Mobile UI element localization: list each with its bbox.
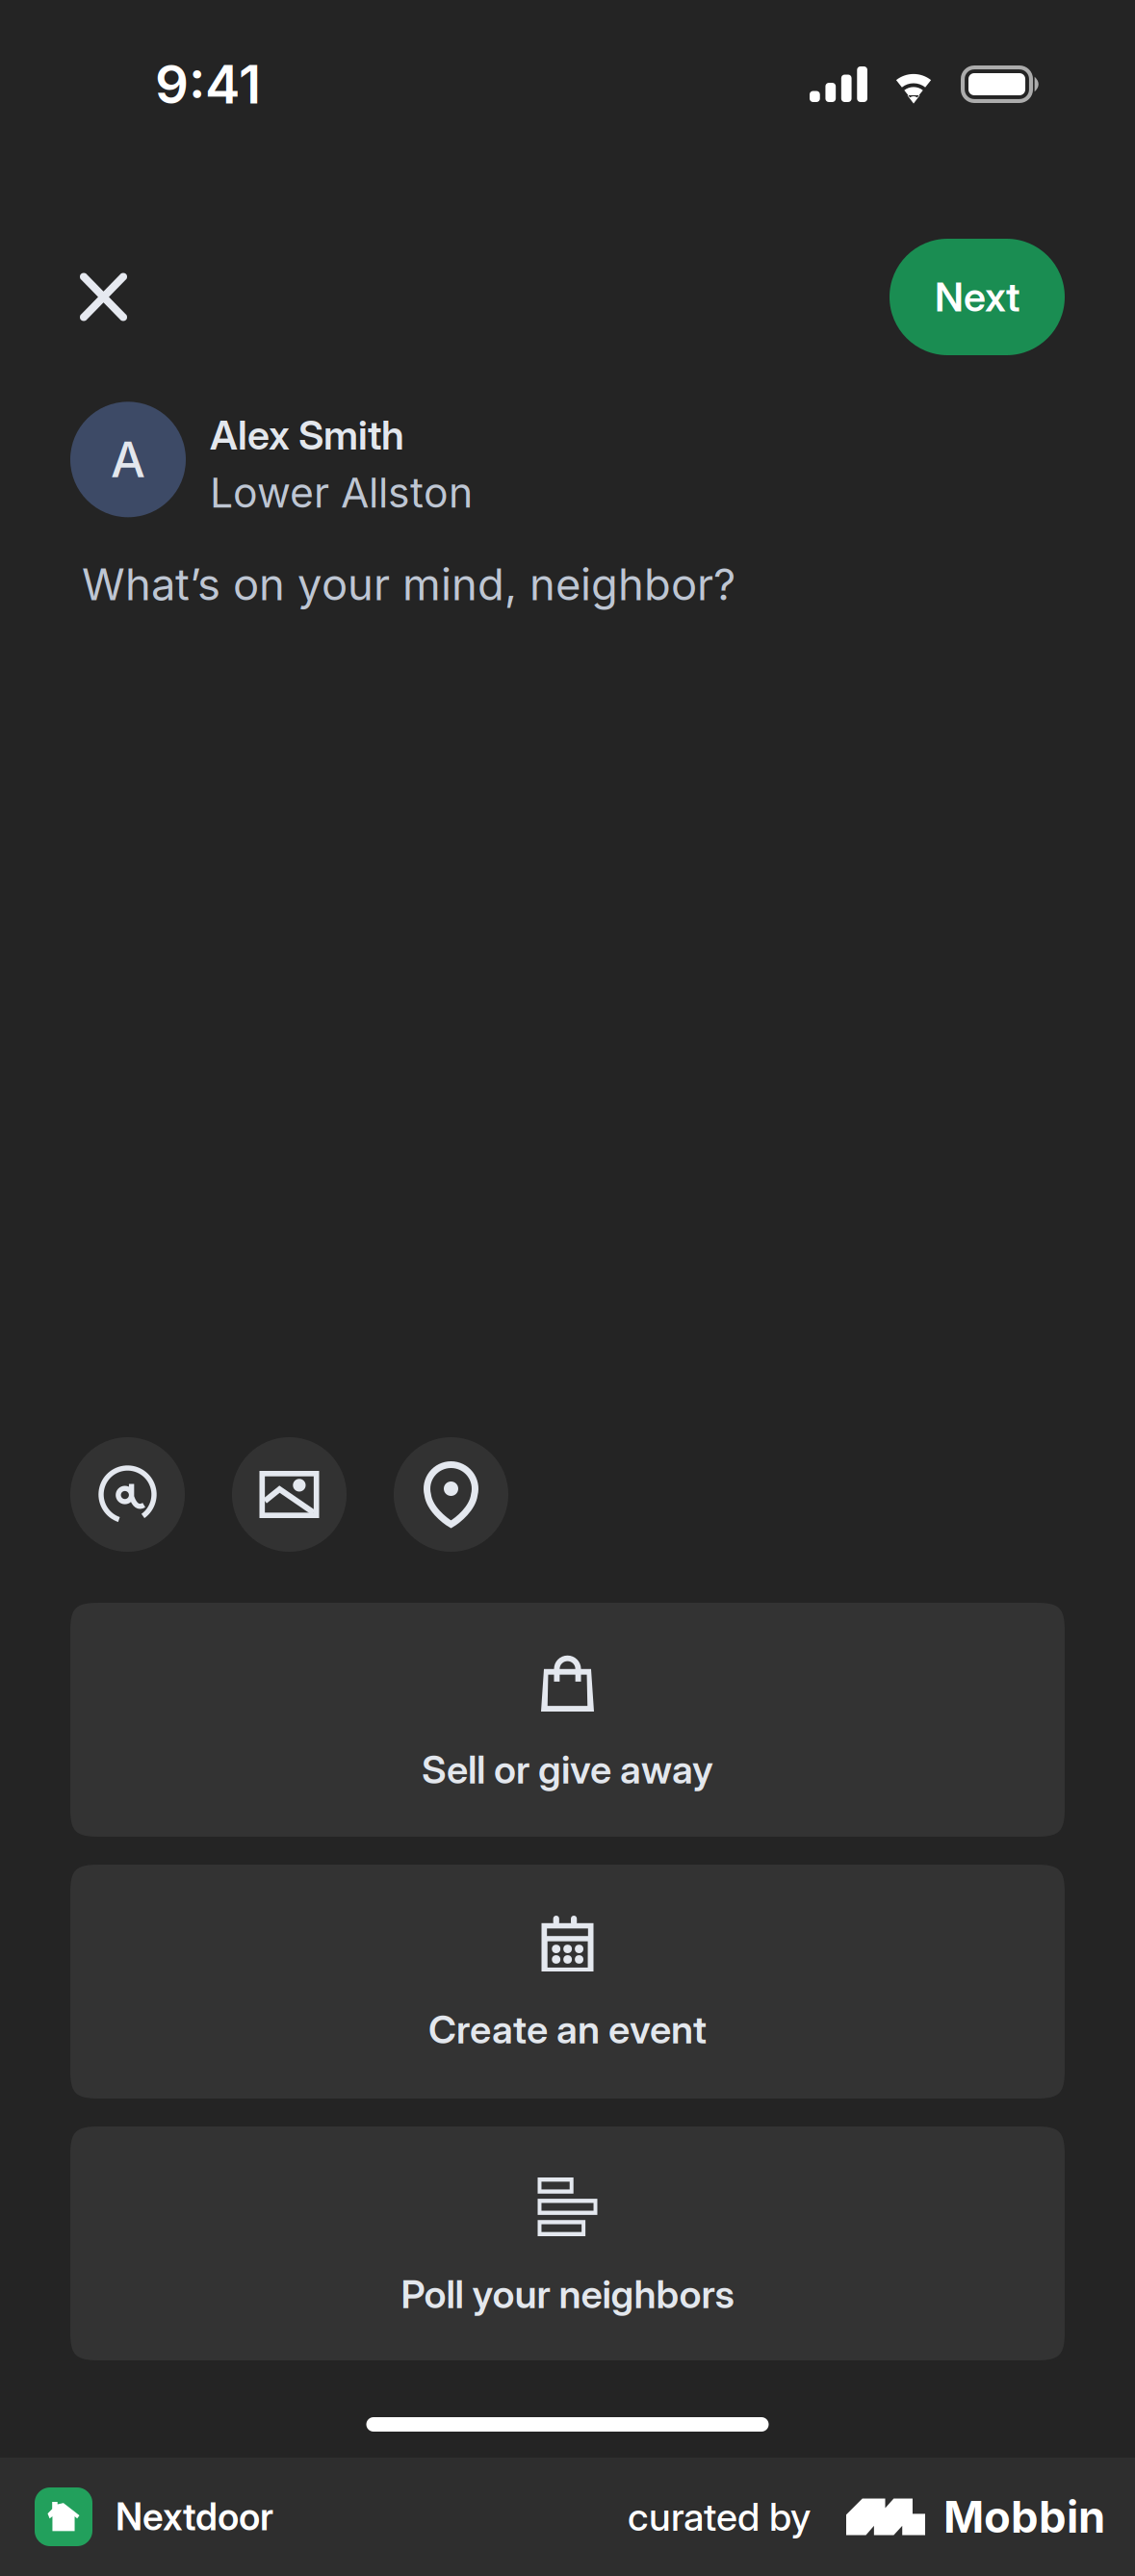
staticText: Sell or give away: [422, 1746, 713, 1793]
button[interactable]: Sell or give away: [70, 1603, 1065, 1837]
button[interactable]: Poll your neighbors: [70, 2126, 1065, 2360]
staticText: Lower Allston: [210, 468, 473, 518]
button[interactable]: Close: [45, 239, 162, 355]
button[interactable]: Next: [890, 239, 1065, 355]
button[interactable]: Mention a neighbor: [70, 1437, 185, 1552]
button[interactable]: Create an event: [70, 1865, 1065, 2099]
staticText: Next: [935, 273, 1019, 321]
staticText: Alex Smith: [210, 411, 404, 459]
staticText: Poll your neighbors: [401, 2271, 734, 2317]
button[interactable]: Add location: [394, 1437, 508, 1552]
staticText: Mobbin: [943, 2490, 1105, 2543]
staticText: Nextdoor: [116, 2494, 273, 2539]
staticText: Create an event: [428, 2006, 707, 2053]
staticText: What’s on your mind, neighbor?: [82, 558, 735, 611]
staticText: curated by: [628, 2494, 811, 2540]
button[interactable]: Add photo: [232, 1437, 347, 1552]
staticText: A: [111, 430, 145, 489]
staticText: 9:41: [155, 52, 261, 116]
